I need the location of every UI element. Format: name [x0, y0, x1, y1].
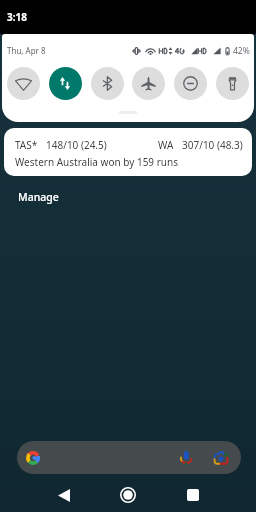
button[interactable]: Wi-Fi — [7, 67, 40, 100]
staticText: 148/10 (24.5) — [46, 138, 107, 152]
button[interactable]: Do not disturb — [174, 67, 207, 100]
staticText: WA — [158, 138, 174, 152]
button[interactable]: Home — [115, 482, 141, 508]
button[interactable]: Mobile data — [49, 67, 82, 100]
button[interactable]: Manage — [13, 186, 64, 208]
staticText: Thu, Apr 8 — [7, 45, 46, 56]
button[interactable]: TAS* — [4, 128, 252, 176]
staticText: Manage — [18, 190, 59, 204]
button[interactable]: Back — [51, 482, 77, 508]
button[interactable]: Recent apps — [180, 482, 206, 508]
button[interactable]: Bluetooth — [91, 67, 124, 100]
staticText: 42% — [233, 45, 250, 57]
button[interactable]: Search — [17, 441, 241, 474]
staticText: 307/10 (48.3) — [182, 138, 243, 152]
staticText: 3:18 — [7, 10, 27, 24]
staticText: TAS* — [15, 138, 38, 152]
button[interactable]: Flashlight — [216, 67, 249, 100]
button[interactable]: Airplane mode — [132, 67, 165, 100]
staticText: Western Australia won by 159 runs — [15, 155, 178, 169]
